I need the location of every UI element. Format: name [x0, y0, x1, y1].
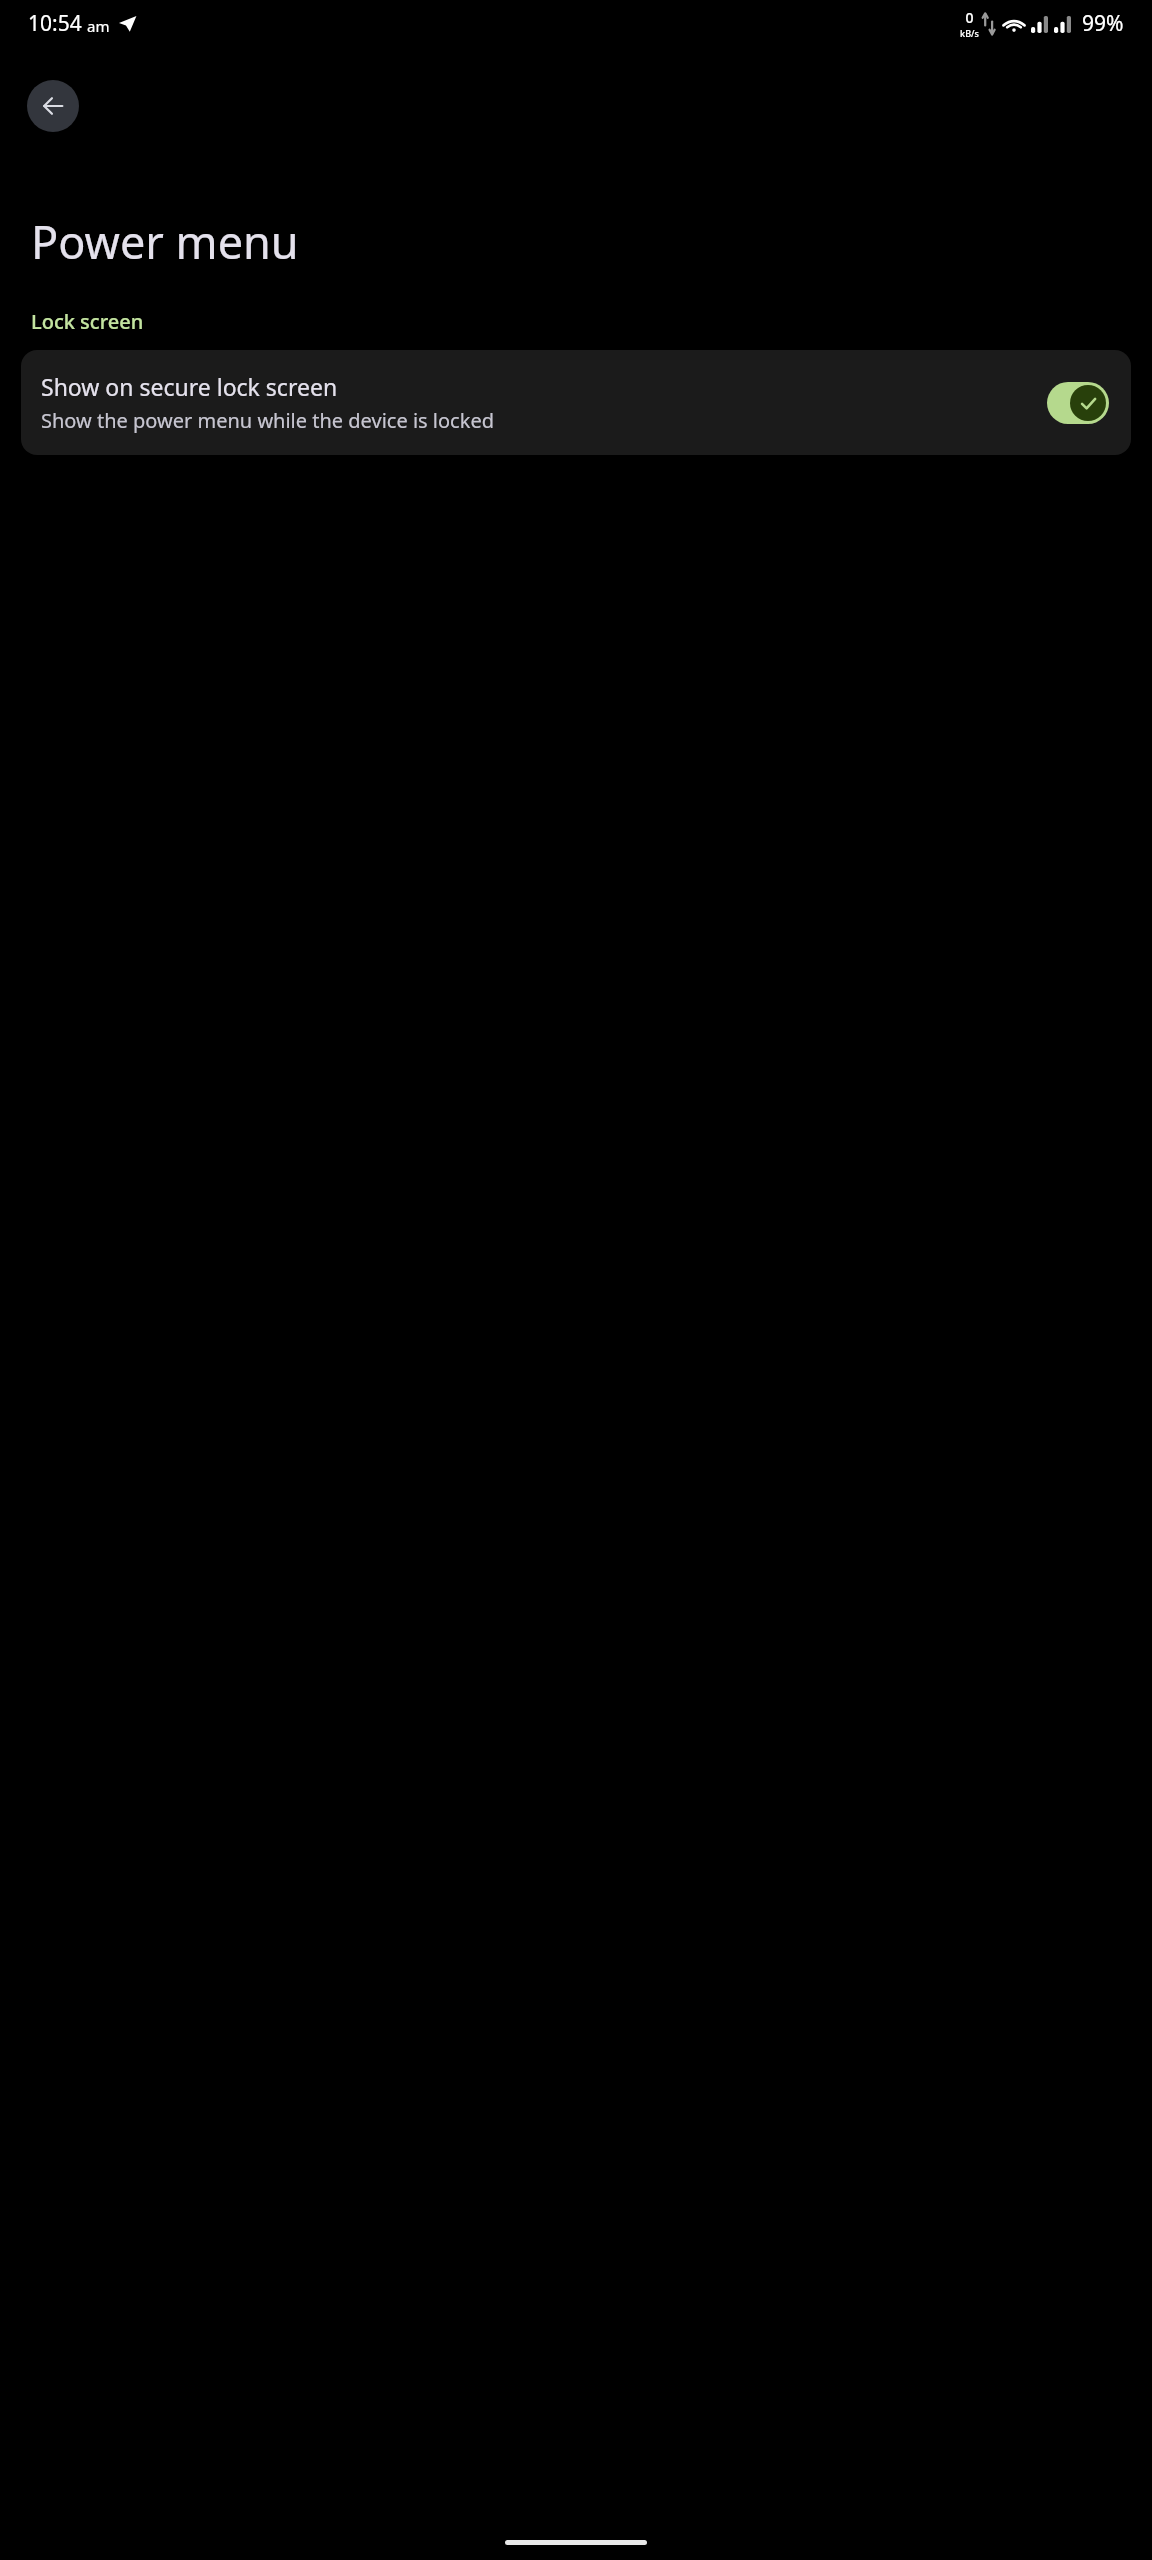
staticText: Show the power menu while the device is … [41, 407, 494, 434]
staticText: Power menu [31, 211, 299, 272]
button[interactable]: Back [27, 80, 79, 132]
staticText: Show on secure lock screen [41, 371, 338, 402]
staticText: Lock screen [31, 308, 144, 335]
staticText: am [87, 16, 110, 36]
staticText: 99% [1082, 9, 1124, 38]
staticText: 10:54 [28, 9, 82, 38]
button[interactable]: Show on secure lock screen [21, 350, 1131, 455]
staticText: kB/s [960, 27, 979, 39]
button[interactable]: Show on secure lock screen toggle [1047, 382, 1109, 424]
staticText: 0 [965, 8, 974, 27]
